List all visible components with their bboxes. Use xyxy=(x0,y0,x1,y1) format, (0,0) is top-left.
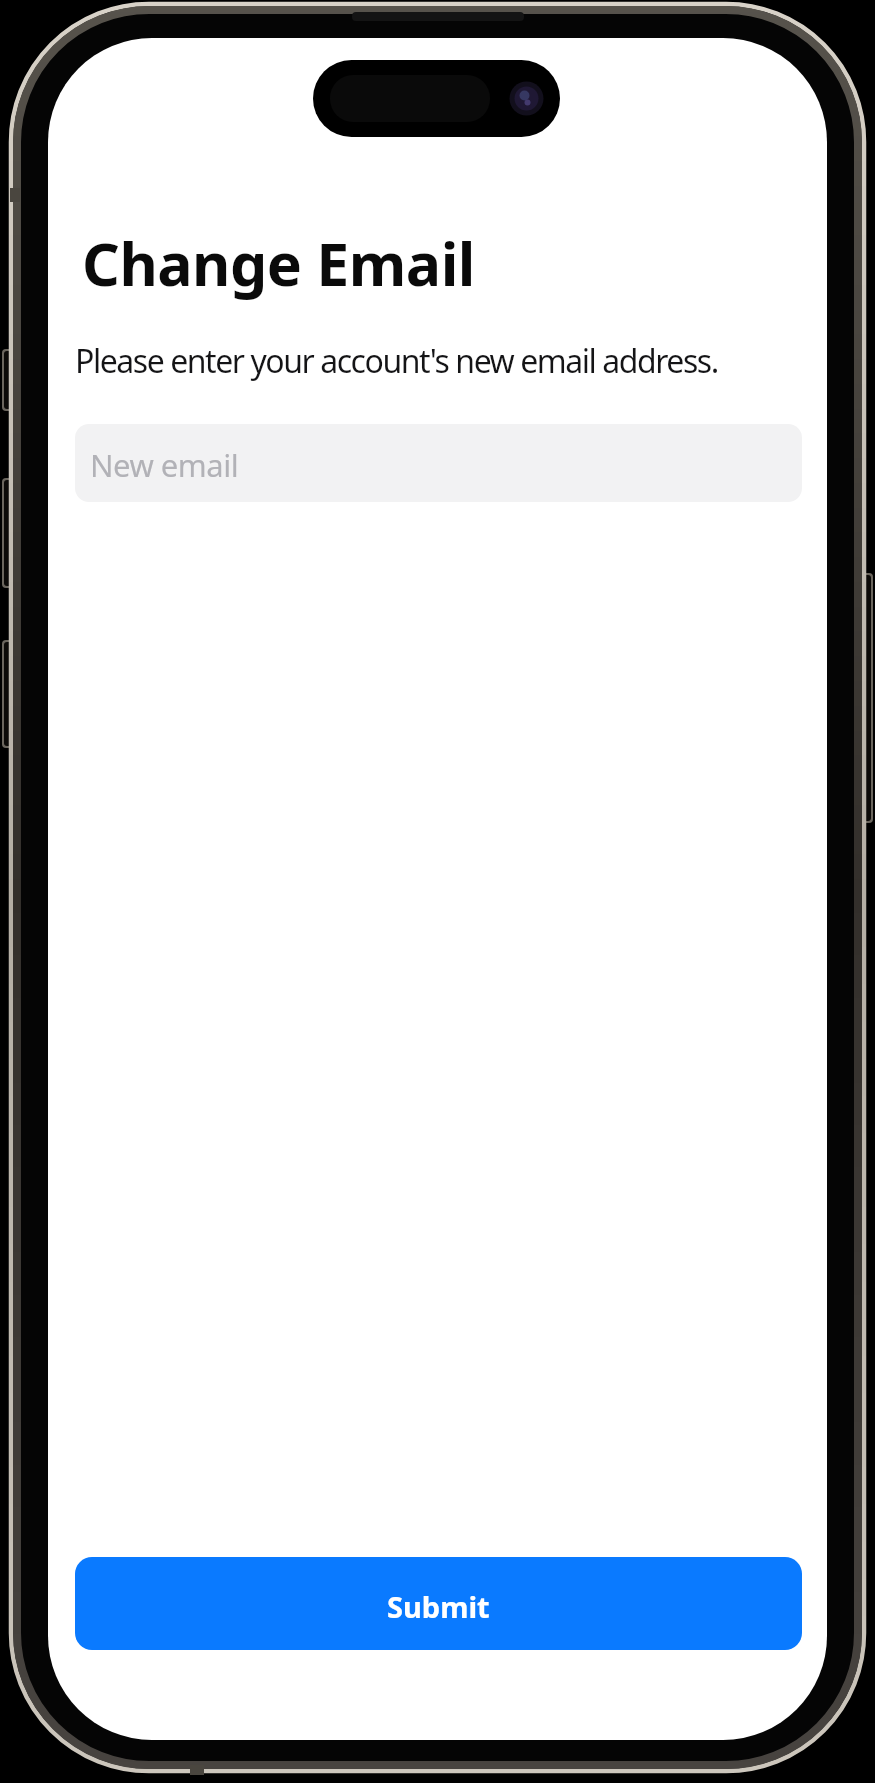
staticText: Please enter your account's new email ad… xyxy=(75,339,718,383)
staticText: New email xyxy=(90,444,239,486)
button[interactable]: Submit xyxy=(75,1557,802,1650)
staticText: Submit xyxy=(387,1587,490,1626)
button[interactable]: New email xyxy=(75,424,802,502)
staticText: Change Email xyxy=(82,223,475,303)
